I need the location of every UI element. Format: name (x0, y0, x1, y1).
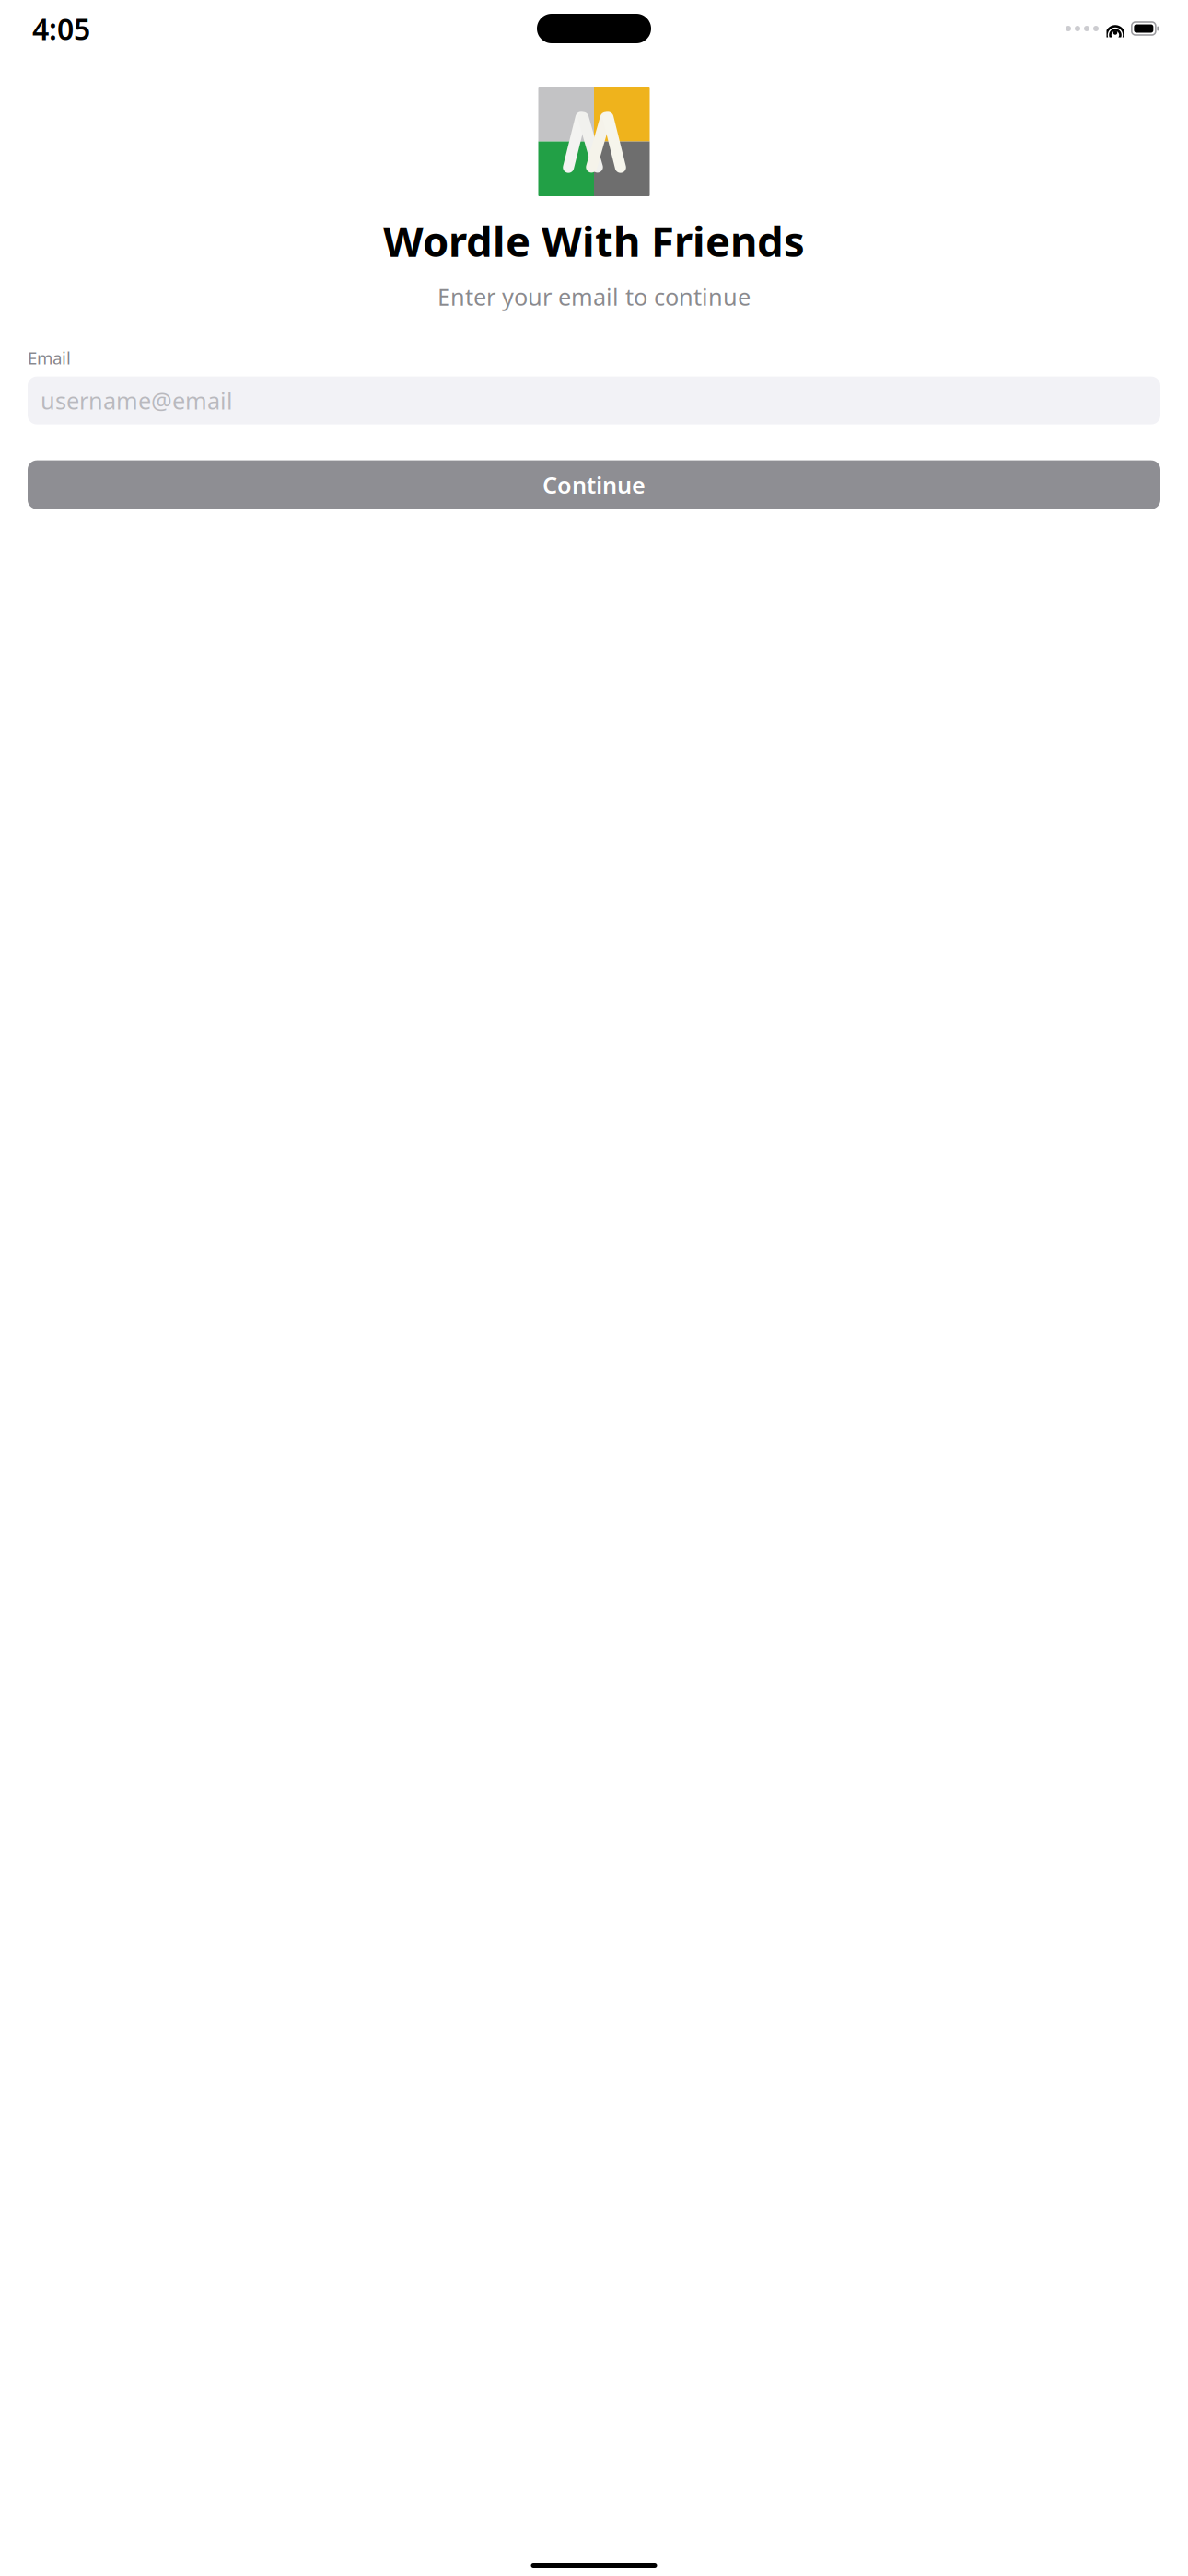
staticText: 4:05 (32, 9, 90, 48)
staticText: Enter your email to continue (437, 281, 751, 312)
button[interactable]: username@email (28, 376, 1160, 424)
button[interactable]: Continue (28, 460, 1160, 509)
staticText: Wordle With Friends (383, 213, 805, 268)
staticText: Continue (542, 469, 646, 500)
staticText: Email (28, 346, 71, 369)
staticText: username@email (41, 385, 233, 416)
